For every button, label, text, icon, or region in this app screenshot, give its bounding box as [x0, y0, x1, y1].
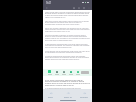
button[interactable]: Contact 4: [67, 71, 74, 75]
button[interactable]: Contact 2: [53, 71, 60, 75]
button[interactable]: Mark unread: [81, 5, 86, 10]
staticText: cusantium doloremque laudantium totam re…: [45, 55, 90, 61]
button[interactable]: Reply: [44, 91, 58, 100]
button[interactable]: Contact 5: [74, 71, 81, 75]
button[interactable]: Contact 3: [60, 71, 67, 75]
button[interactable]: Logo: [81, 71, 89, 74]
staticText: Lorem ipsum dolor sit amet consectetur a…: [45, 11, 90, 19]
staticText: id est laborum sed ut perspiciatis unde …: [45, 50, 90, 54]
button[interactable]: Back: [44, 5, 49, 10]
staticText: or sit amet consectetur adipiscing elit …: [45, 79, 90, 87]
staticText: pteur sint occaecat cupidatat non proide…: [45, 27, 90, 33]
staticText: si architecto beatae vitae dicta sunt ex…: [45, 88, 90, 89]
staticText: niam quis nostrud exercitation ullamco l…: [45, 20, 90, 26]
button[interactable]: Delete: [76, 5, 81, 10]
button[interactable]: Forward: [77, 91, 91, 100]
staticText: Reply: [48, 96, 54, 99]
staticText: Forward: [80, 96, 88, 99]
button[interactable]: Contact 1: [46, 70, 53, 75]
button[interactable]: Archive: [71, 5, 76, 10]
staticText: o eiusmod tempor incididunt ut labore et…: [45, 34, 90, 42]
staticText: 9:41: [46, 1, 52, 5]
button[interactable]: Reply all: [61, 91, 75, 100]
staticText: n reprehenderit voluptate velit esse cil…: [45, 43, 90, 49]
staticText: Reply all: [64, 96, 72, 99]
